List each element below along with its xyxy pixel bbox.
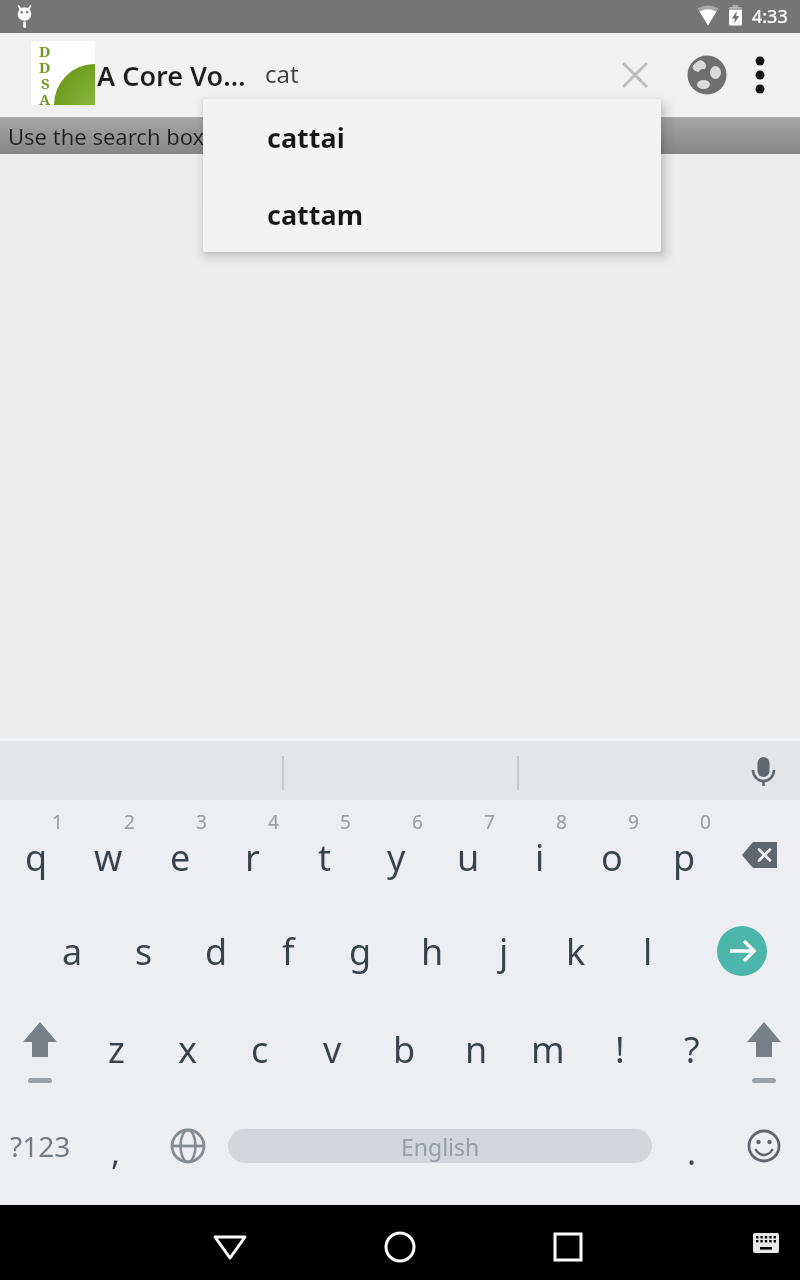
- staticText: u: [457, 833, 480, 882]
- button[interactable]: k: [541, 911, 611, 991]
- staticText: q: [25, 833, 48, 882]
- button[interactable]: b: [369, 1009, 439, 1089]
- staticText: v: [323, 1025, 342, 1074]
- button[interactable]: ?: [657, 1009, 727, 1089]
- button[interactable]: D: [31, 41, 95, 105]
- button[interactable]: z: [81, 1009, 151, 1089]
- staticText: 6: [412, 809, 423, 835]
- staticText: p: [673, 833, 696, 882]
- button[interactable]: [718, 746, 778, 794]
- staticText: 7: [484, 809, 495, 835]
- staticText: 1: [52, 809, 63, 835]
- button[interactable]: m: [513, 1009, 583, 1089]
- button[interactable]: [368, 1210, 432, 1274]
- button[interactable]: ,: [86, 1112, 146, 1192]
- staticText: ?123: [10, 1127, 71, 1165]
- button[interactable]: !: [585, 1009, 655, 1089]
- staticText: cattai: [267, 119, 345, 156]
- button[interactable]: [8, 1009, 72, 1089]
- staticText: ,: [111, 1129, 121, 1175]
- button[interactable]: [732, 1009, 796, 1089]
- button[interactable]: d: [181, 911, 251, 991]
- staticText: r: [245, 833, 260, 882]
- button[interactable]: n: [441, 1009, 511, 1089]
- staticText: e: [170, 833, 191, 882]
- button[interactable]: [613, 53, 657, 97]
- button[interactable]: s: [109, 911, 179, 991]
- staticText: A Core Vo…: [97, 57, 246, 94]
- staticText: cat: [265, 57, 299, 90]
- button[interactable]: .: [662, 1112, 722, 1192]
- button[interactable]: English: [228, 1129, 652, 1163]
- staticText: w: [94, 833, 123, 882]
- button[interactable]: cattam: [203, 176, 661, 252]
- button[interactable]: c: [225, 1009, 295, 1089]
- staticText: a: [62, 927, 83, 976]
- staticText: m: [531, 1025, 565, 1074]
- button[interactable]: q: [1, 817, 71, 897]
- button[interactable]: u: [433, 817, 503, 897]
- staticText: b: [393, 1025, 416, 1074]
- staticText: English: [401, 1131, 480, 1162]
- staticText: s: [135, 927, 153, 976]
- staticText: z: [108, 1025, 125, 1074]
- button[interactable]: [724, 815, 794, 895]
- staticText: cattam: [267, 196, 364, 233]
- button[interactable]: [198, 1210, 262, 1274]
- staticText: 9: [628, 809, 639, 835]
- button[interactable]: l: [613, 911, 683, 991]
- button[interactable]: w: [73, 817, 143, 897]
- staticText: i: [535, 833, 545, 882]
- staticText: f: [282, 927, 295, 976]
- staticText: 4:33: [752, 4, 788, 29]
- button[interactable]: [156, 1106, 220, 1186]
- staticText: .: [687, 1129, 697, 1175]
- button[interactable]: g: [325, 911, 395, 991]
- staticText: k: [566, 927, 586, 976]
- button[interactable]: e: [145, 817, 215, 897]
- button[interactable]: x: [153, 1009, 223, 1089]
- button[interactable]: j: [469, 911, 539, 991]
- button[interactable]: f: [253, 911, 323, 991]
- staticText: 5: [340, 809, 351, 835]
- button[interactable]: [685, 53, 729, 97]
- staticText: n: [465, 1025, 488, 1074]
- button[interactable]: v: [297, 1009, 367, 1089]
- staticText: 8: [556, 809, 567, 835]
- staticText: 3: [196, 809, 207, 835]
- staticText: c: [251, 1025, 269, 1074]
- staticText: D: [39, 57, 51, 73]
- button[interactable]: t: [289, 817, 359, 897]
- staticText: ?: [684, 1025, 700, 1074]
- staticText: d: [205, 927, 228, 976]
- staticText: D: [39, 41, 51, 57]
- staticText: l: [643, 927, 653, 976]
- button[interactable]: r: [217, 817, 287, 897]
- button[interactable]: [732, 1106, 796, 1186]
- button[interactable]: [536, 1210, 600, 1274]
- staticText: o: [601, 833, 623, 882]
- staticText: S: [41, 73, 50, 89]
- staticText: x: [178, 1025, 198, 1074]
- button[interactable]: [717, 926, 767, 976]
- staticText: A: [39, 89, 51, 105]
- staticText: Use the search box: [8, 121, 205, 151]
- staticText: j: [499, 927, 509, 976]
- staticText: t: [318, 833, 331, 882]
- button[interactable]: y: [361, 817, 431, 897]
- button[interactable]: ?123: [2, 1106, 78, 1186]
- button[interactable]: i: [505, 817, 575, 897]
- staticText: 0: [700, 809, 711, 835]
- button[interactable]: [738, 42, 782, 108]
- staticText: !: [615, 1025, 625, 1074]
- button[interactable]: [752, 1224, 800, 1262]
- staticText: 4: [268, 809, 279, 835]
- staticText: y: [387, 833, 406, 882]
- staticText: g: [349, 927, 372, 976]
- button[interactable]: p: [649, 817, 719, 897]
- button[interactable]: h: [397, 911, 467, 991]
- button[interactable]: o: [577, 817, 647, 897]
- staticText: 2: [124, 809, 135, 835]
- button[interactable]: cattai: [203, 99, 661, 175]
- button[interactable]: a: [37, 911, 107, 991]
